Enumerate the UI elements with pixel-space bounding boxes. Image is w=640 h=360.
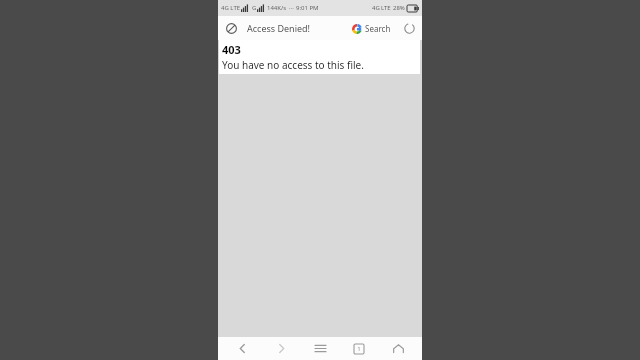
button[interactable]: Back <box>227 337 257 360</box>
staticText: 4G <box>372 4 380 12</box>
staticText: Access Denied! <box>247 22 310 34</box>
staticText: 28% <box>393 4 405 12</box>
staticText: 403 <box>222 42 241 57</box>
staticText: 1 <box>357 345 361 353</box>
staticText: You have no access to this file. <box>222 58 364 72</box>
button[interactable]: Home <box>383 337 413 360</box>
staticText: ··· <box>289 4 294 12</box>
button[interactable]: Forward <box>266 337 296 360</box>
staticText: G <box>252 4 257 12</box>
button[interactable]: Menu <box>305 337 335 360</box>
staticText: LTE <box>381 4 391 12</box>
staticText: 144K/s <box>267 4 287 12</box>
staticText: 9:01 PM <box>296 4 319 12</box>
button[interactable]: Reload <box>401 20 417 36</box>
button[interactable]: Tabs <box>344 337 374 360</box>
button[interactable]: Search <box>352 23 391 34</box>
button[interactable]: Block content <box>223 20 239 36</box>
staticText: Search <box>365 23 391 34</box>
staticText: 4G LTE <box>221 4 241 12</box>
